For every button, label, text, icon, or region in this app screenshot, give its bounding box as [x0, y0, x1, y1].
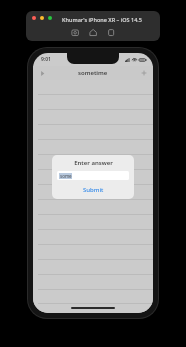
button[interactable]: Rotate: [107, 28, 116, 37]
button[interactable]: Play: [37, 68, 47, 78]
button[interactable]: Close: [32, 16, 36, 20]
button[interactable]: [33, 80, 153, 95]
button[interactable]: [33, 215, 153, 230]
button[interactable]: [33, 230, 153, 245]
button[interactable]: [33, 140, 153, 155]
button[interactable]: [33, 290, 153, 304]
button[interactable]: Add: [139, 68, 149, 78]
button[interactable]: [33, 185, 153, 200]
staticText: Khumar's iPhone XR – iOS 14.5: [62, 16, 142, 23]
staticText: some: [60, 173, 72, 179]
button[interactable]: Home: [89, 28, 98, 37]
button[interactable]: [33, 260, 153, 275]
button[interactable]: Submit: [57, 185, 129, 195]
button[interactable]: Screenshot: [71, 28, 80, 37]
button[interactable]: [33, 245, 153, 260]
button[interactable]: some: [57, 171, 129, 180]
button[interactable]: [33, 125, 153, 140]
button[interactable]: [33, 155, 153, 170]
button[interactable]: Zoom: [48, 16, 52, 20]
button[interactable]: [33, 110, 153, 125]
staticText: 9:01: [41, 56, 51, 63]
button[interactable]: [33, 170, 153, 185]
button[interactable]: [33, 275, 153, 290]
button[interactable]: [33, 200, 153, 215]
staticText: Submit: [83, 186, 104, 194]
button[interactable]: [33, 95, 153, 110]
button[interactable]: Minimize: [40, 16, 44, 20]
staticText: sometime: [78, 69, 108, 77]
staticText: Enter answer: [74, 159, 113, 167]
